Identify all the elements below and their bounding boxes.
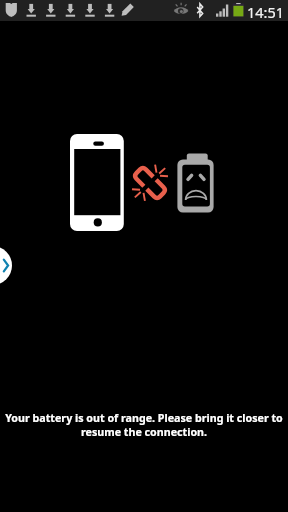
staticText: 14:51 <box>247 2 285 22</box>
staticText: Your battery is out of range. Please bri… <box>0 411 288 439</box>
button[interactable]: Open panel <box>0 246 12 285</box>
